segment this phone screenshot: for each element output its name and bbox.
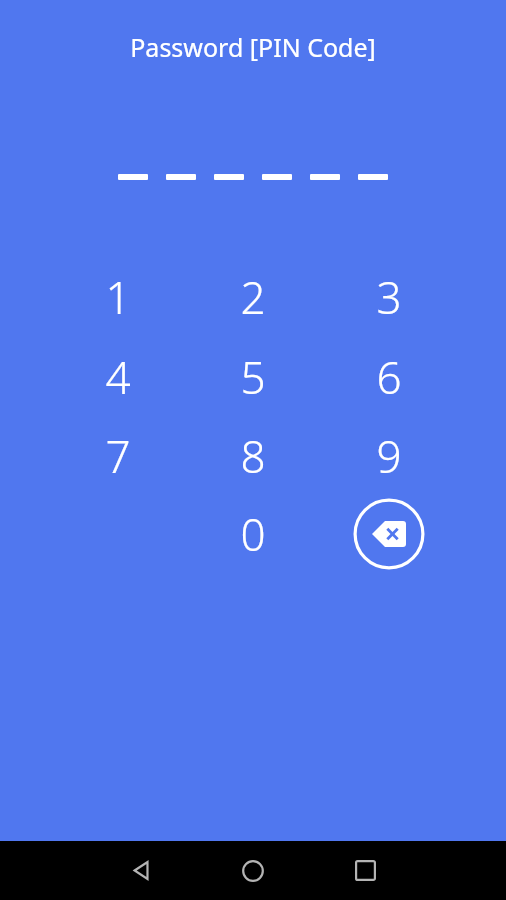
button[interactable]: Recent apps [337,841,393,900]
button[interactable]: 3 [343,260,435,334]
staticText: 9 [376,426,402,486]
staticText: 6 [376,347,402,407]
button[interactable]: 2 [207,260,299,334]
staticText: 7 [105,426,131,486]
button[interactable]: 7 [72,419,164,493]
button[interactable]: Back [113,841,169,900]
button[interactable]: 6 [343,340,435,414]
staticText: 2 [240,267,266,327]
button[interactable]: 4 [72,340,164,414]
staticText: Password [PIN Code] [0,30,506,64]
button[interactable]: 9 [343,419,435,493]
staticText: 5 [240,347,266,407]
staticText: 3 [376,267,402,327]
staticText: 0 [240,504,266,564]
button[interactable]: Backspace [353,498,425,570]
button[interactable]: 1 [72,260,164,334]
staticText: 1 [105,267,131,327]
button[interactable]: Home [225,841,281,900]
staticText: 8 [240,426,266,486]
button[interactable]: 0 [207,497,299,571]
staticText: 4 [105,347,131,407]
button[interactable]: 8 [207,419,299,493]
button[interactable]: 5 [207,340,299,414]
